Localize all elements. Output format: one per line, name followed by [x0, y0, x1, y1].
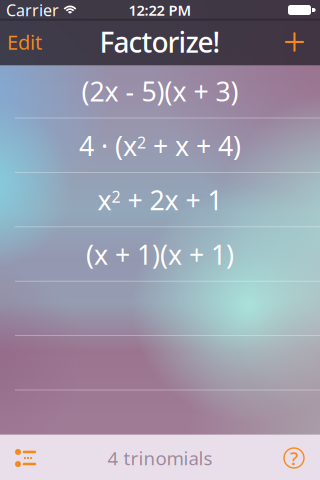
- staticText: Factorize!: [99, 23, 220, 61]
- staticText: 4 · (x2 + x + 4): [79, 128, 241, 163]
- button[interactable]: Add: [285, 20, 320, 64]
- staticText: Carrier: [6, 0, 59, 21]
- button[interactable]: (x + 1)(x + 1): [0, 227, 320, 282]
- button[interactable]: Help: [284, 435, 320, 480]
- button[interactable]: Edit: [0, 19, 42, 65]
- button[interactable]: 4 · (x2 + x + 4): [0, 118, 320, 173]
- staticText: Edit: [7, 29, 42, 55]
- staticText: 4 trinomials: [107, 446, 212, 470]
- button[interactable]: Options: [0, 438, 36, 478]
- staticText: (x + 1)(x + 1): [86, 237, 234, 272]
- staticText: 12:22 PM: [128, 0, 191, 20]
- staticText: x2 + 2x + 1: [97, 182, 222, 218]
- staticText: (2x - 5)(x + 3): [81, 73, 238, 109]
- button[interactable]: x2 + 2x + 1: [0, 173, 320, 227]
- button[interactable]: (2x - 5)(x + 3): [0, 64, 320, 118]
- staticText: ?: [290, 446, 298, 470]
